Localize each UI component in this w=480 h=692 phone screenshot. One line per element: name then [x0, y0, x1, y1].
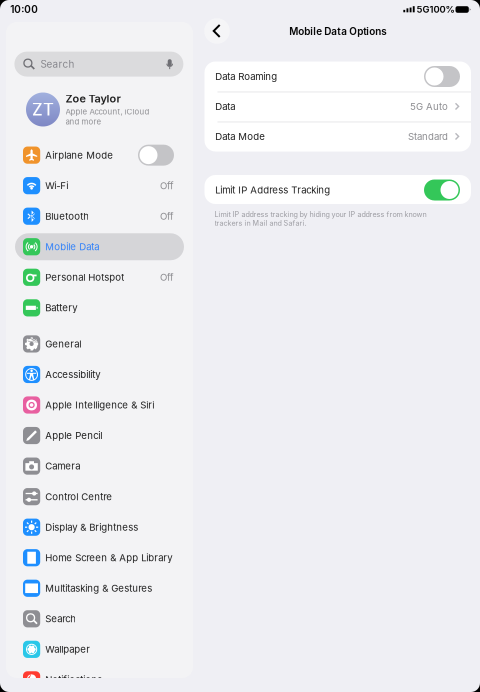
button[interactable]: Personal Hotspot	[15, 264, 184, 291]
button[interactable]: Wallpaper	[15, 636, 184, 663]
button[interactable]: Back	[203, 17, 230, 44]
button[interactable]: Data	[204, 91, 471, 121]
button[interactable]: General	[15, 330, 184, 357]
staticText: Personal Hotspot	[45, 271, 124, 283]
button[interactable]: Camera	[15, 453, 184, 480]
button[interactable]: Apple Intelligence & Siri	[15, 391, 184, 418]
staticText: Home Screen & App Library	[45, 552, 172, 563]
staticText: Control Centre	[45, 491, 112, 502]
staticText: General	[45, 338, 81, 350]
button[interactable]: Notifications	[15, 666, 184, 692]
button[interactable]: Search	[15, 605, 184, 632]
button[interactable]: Battery	[15, 294, 184, 321]
button[interactable]: Home Screen & App Library	[15, 544, 184, 571]
staticText: Limit IP Address Tracking	[215, 184, 330, 196]
staticText: Off	[160, 271, 174, 283]
staticText: Accessibility	[45, 369, 100, 380]
staticText: Data Mode	[215, 131, 265, 142]
staticText: Battery	[45, 302, 77, 314]
staticText: Data Roaming	[215, 71, 277, 82]
button[interactable]: Multitasking & Gestures	[15, 575, 184, 602]
staticText: Data	[215, 101, 235, 112]
button[interactable]: Mobile Data	[15, 233, 184, 260]
staticText: Off	[160, 210, 174, 222]
staticText: Limit IP address tracking by hiding your…	[214, 210, 426, 227]
staticText: Multitasking & Gestures	[45, 582, 152, 594]
staticText: and more	[65, 117, 101, 126]
staticText: Standard	[408, 131, 448, 142]
staticText: ZT	[32, 99, 54, 120]
staticText: Search	[45, 613, 76, 625]
staticText: Airplane Mode	[45, 149, 113, 161]
staticText: Mobile Data Options	[289, 25, 386, 37]
staticText: Apple Pencil	[45, 430, 102, 441]
staticText: Wi-Fi	[45, 180, 68, 191]
staticText: Wallpaper	[45, 643, 90, 655]
button[interactable]: Data Roaming	[204, 61, 471, 91]
staticText: Apple Account, iCloud	[65, 107, 149, 116]
staticText: 5G Auto	[410, 101, 448, 112]
button[interactable]: Airplane Mode	[15, 142, 184, 169]
staticText: Search	[40, 58, 74, 70]
staticText: Mobile Data	[45, 241, 99, 253]
staticText: Bluetooth	[45, 210, 89, 222]
staticText: Zoe Taylor	[65, 92, 120, 105]
button[interactable]: Bluetooth	[15, 203, 184, 230]
staticText: Camera	[45, 460, 80, 472]
staticText: Notifications	[45, 674, 102, 686]
button[interactable]: Wi-Fi	[15, 172, 184, 199]
staticText: Apple Intelligence & Siri	[45, 399, 154, 411]
staticText: 5G	[417, 4, 430, 15]
button[interactable]: Display & Brightness	[15, 514, 184, 541]
button[interactable]: Accessibility	[15, 361, 184, 388]
button[interactable]: Limit IP Address Tracking	[204, 175, 471, 205]
staticText: Off	[160, 180, 174, 191]
button[interactable]: Apple Pencil	[15, 422, 184, 449]
button[interactable]: Data Mode	[204, 121, 471, 151]
staticText: Display & Brightness	[45, 521, 138, 533]
staticText: 10:00	[10, 3, 38, 15]
button[interactable]: Search	[14, 52, 183, 77]
button[interactable]: Control Centre	[15, 483, 184, 510]
staticText: 100%	[429, 4, 454, 15]
button[interactable]: ZT	[6, 85, 187, 133]
